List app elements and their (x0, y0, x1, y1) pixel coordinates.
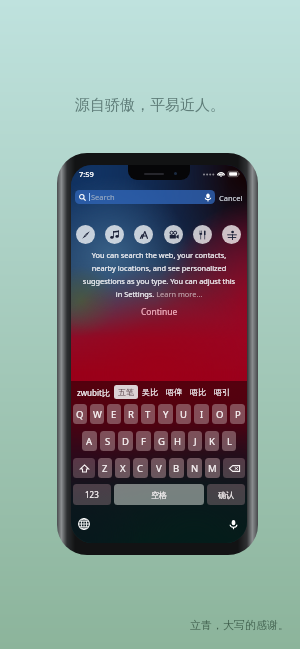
staticText: Y (163, 408, 169, 421)
button[interactable]: Backspace (223, 458, 245, 478)
button[interactable]: Y (158, 404, 173, 424)
button[interactable]: V (151, 458, 166, 478)
button[interactable]: P (230, 404, 245, 424)
button[interactable]: B (169, 458, 184, 478)
button[interactable]: 唔俾 (162, 385, 186, 399)
staticText: V (156, 462, 162, 475)
staticText: You can search the web, your contacts, n… (81, 250, 237, 299)
button[interactable]: 唔比 (186, 385, 210, 399)
staticText: X (120, 462, 126, 475)
staticText: H (174, 435, 182, 448)
staticText: F (141, 435, 146, 448)
button[interactable]: Q (73, 404, 87, 424)
button[interactable]: 五笔 (114, 385, 138, 399)
staticText: O (216, 408, 224, 421)
button[interactable]: Safari (76, 225, 95, 244)
staticText: Cancel (219, 193, 243, 201)
button[interactable]: Dictation (227, 518, 240, 531)
button[interactable]: C (133, 458, 148, 478)
staticText: W (93, 408, 102, 421)
staticText: B (173, 462, 180, 475)
staticText: T (145, 408, 151, 421)
staticText: J (194, 435, 197, 448)
staticText: 吴比 (142, 387, 158, 397)
staticText: E (111, 408, 117, 421)
staticText: M (208, 462, 217, 475)
staticText: 唔引 (214, 387, 230, 397)
staticText: 立青，大写的感谢。 (190, 618, 289, 632)
button[interactable]: Shift (73, 458, 95, 478)
button[interactable]: I (194, 404, 209, 424)
button[interactable]: H (171, 431, 185, 451)
button[interactable]: App Store (134, 225, 153, 244)
button[interactable]: Continue (133, 305, 186, 319)
staticText: Search (91, 192, 115, 202)
button[interactable]: X (115, 458, 130, 478)
staticText: 唔俾 (166, 387, 182, 397)
button[interactable]: O (212, 404, 227, 424)
button[interactable]: Voice search (205, 193, 211, 202)
button[interactable]: N (187, 458, 202, 478)
staticText: K (209, 435, 215, 448)
staticText: 空格 (151, 490, 167, 500)
button[interactable]: S (100, 431, 115, 451)
staticText: S (105, 435, 111, 448)
button[interactable]: Search (75, 190, 215, 204)
staticText: 123 (85, 489, 99, 500)
button[interactable]: E (107, 404, 121, 424)
button[interactable]: 123 (73, 484, 111, 505)
staticText: 7:59 (79, 169, 94, 179)
staticText: L (227, 435, 232, 448)
button[interactable]: M (205, 458, 220, 478)
staticText: 确认 (218, 490, 234, 500)
button[interactable]: 确认 (207, 484, 245, 505)
staticText: N (191, 462, 199, 475)
staticText: D (122, 435, 129, 448)
button[interactable]: W (90, 404, 104, 424)
button[interactable]: L (222, 431, 236, 451)
staticText: P (235, 408, 241, 421)
staticText: zwubit比 (77, 387, 110, 398)
button[interactable]: Restaurants (193, 225, 212, 244)
staticText: R (128, 408, 134, 421)
button[interactable]: 空格 (114, 484, 204, 505)
button[interactable]: G (154, 431, 168, 451)
button[interactable]: Change keyboard (78, 518, 90, 530)
button[interactable]: 吴比 (138, 385, 162, 399)
staticText: U (180, 408, 187, 421)
button[interactable]: Music (105, 225, 124, 244)
staticText: 唔比 (190, 387, 206, 397)
staticText: Continue (141, 306, 178, 318)
button[interactable]: Z (98, 458, 112, 478)
staticText: A (86, 435, 93, 448)
staticText: I (200, 408, 204, 421)
staticText: 五笔 (118, 387, 134, 397)
staticText: C (137, 462, 144, 475)
button[interactable]: T (141, 404, 155, 424)
button[interactable]: U (176, 404, 191, 424)
button[interactable]: K (205, 431, 219, 451)
staticText: Z (102, 462, 108, 475)
button[interactable]: D (118, 431, 133, 451)
button[interactable]: J (188, 431, 202, 451)
button[interactable]: R (124, 404, 138, 424)
button[interactable]: Movies (164, 225, 183, 244)
button[interactable]: A (82, 431, 97, 451)
button[interactable]: Maps (222, 225, 241, 244)
button[interactable]: F (136, 431, 151, 451)
staticText: Q (76, 408, 84, 421)
button[interactable]: zwubit比 (73, 385, 114, 400)
button[interactable]: Cancel (218, 190, 244, 204)
button[interactable]: 唔引 (210, 385, 234, 399)
staticText: 源自骄傲，平易近人。 (75, 96, 225, 115)
staticText: G (158, 435, 165, 448)
